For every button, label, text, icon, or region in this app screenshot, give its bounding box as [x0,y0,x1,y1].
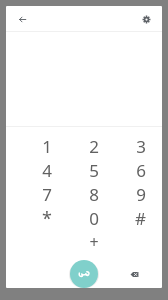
staticText: 2 [89,135,99,158]
staticText: 5 [89,159,99,182]
button[interactable]: 8 [72,182,116,206]
button[interactable]: 4 [25,158,69,182]
button[interactable]: * [25,206,69,230]
button[interactable]: Call [70,260,98,288]
button[interactable]: Back [12,9,32,29]
button[interactable]: 5 [72,158,116,182]
staticText: 4 [42,159,52,182]
staticText: 3 [136,135,146,158]
button[interactable]: 2 [72,134,116,158]
staticText: 6 [136,159,146,182]
button[interactable]: 0 [72,206,116,230]
button[interactable]: 9 [119,182,162,206]
button[interactable]: 1 [25,134,69,158]
staticText: 8 [89,183,99,206]
button[interactable]: 6 [119,158,162,182]
staticText: 1 [42,135,52,158]
button[interactable]: 3 [119,134,162,158]
staticText: + [89,231,99,253]
staticText: 9 [136,183,146,206]
button[interactable]: + [72,230,116,254]
staticText: 7 [42,183,52,206]
staticText: * [42,206,52,230]
button[interactable]: 7 [25,182,69,206]
staticText: 0 [89,207,99,230]
button[interactable]: Settings [136,9,156,29]
staticText: # [135,207,146,230]
button[interactable]: # [119,206,162,230]
button[interactable]: Backspace [125,265,143,283]
